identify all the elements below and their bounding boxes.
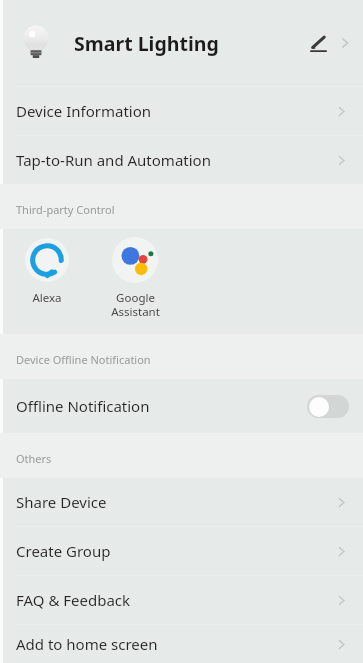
- staticText: Smart Lighting: [74, 30, 219, 57]
- staticText: Google Assistant: [111, 290, 160, 319]
- button[interactable]: Device Information: [0, 87, 363, 135]
- button[interactable]: FAQ & Feedback: [0, 576, 363, 624]
- staticText: Alexa: [32, 290, 62, 306]
- staticText: Device Offline Notification: [16, 352, 151, 367]
- button[interactable]: Offline Notification toggle, off: [307, 395, 349, 418]
- staticText: Add to home screen: [16, 634, 158, 654]
- button[interactable]: Tap-to-Run and Automation: [0, 136, 363, 184]
- staticText: Third-party Control: [16, 202, 115, 217]
- staticText: Offline Notification: [16, 396, 150, 416]
- button[interactable]: Add to home screen: [0, 625, 363, 663]
- button[interactable]: Edit device name: [301, 26, 335, 60]
- button[interactable]: Offline Notification: [0, 379, 363, 433]
- button[interactable]: Google Assistant: [104, 229, 166, 319]
- staticText: Create Group: [16, 541, 111, 561]
- staticText: FAQ & Feedback: [16, 590, 131, 610]
- button[interactable]: Smart Lighting: [0, 0, 363, 86]
- staticText: Tap-to-Run and Automation: [16, 150, 211, 170]
- button[interactable]: Share Device: [0, 478, 363, 526]
- staticText: Others: [16, 451, 52, 466]
- button[interactable]: Alexa: [16, 229, 78, 306]
- staticText: Share Device: [16, 492, 107, 512]
- staticText: Device Information: [16, 101, 152, 121]
- button[interactable]: Create Group: [0, 527, 363, 575]
